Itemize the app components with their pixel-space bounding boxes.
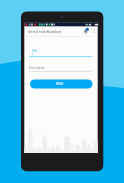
staticText: SEND [56, 82, 64, 86]
button[interactable] [30, 79, 94, 88]
button[interactable]: Notifications [83, 27, 91, 35]
staticText: Title [32, 49, 38, 53]
staticText: Send notification [28, 29, 62, 35]
staticText: Description [29, 66, 46, 70]
button[interactable]: More options [91, 27, 98, 34]
